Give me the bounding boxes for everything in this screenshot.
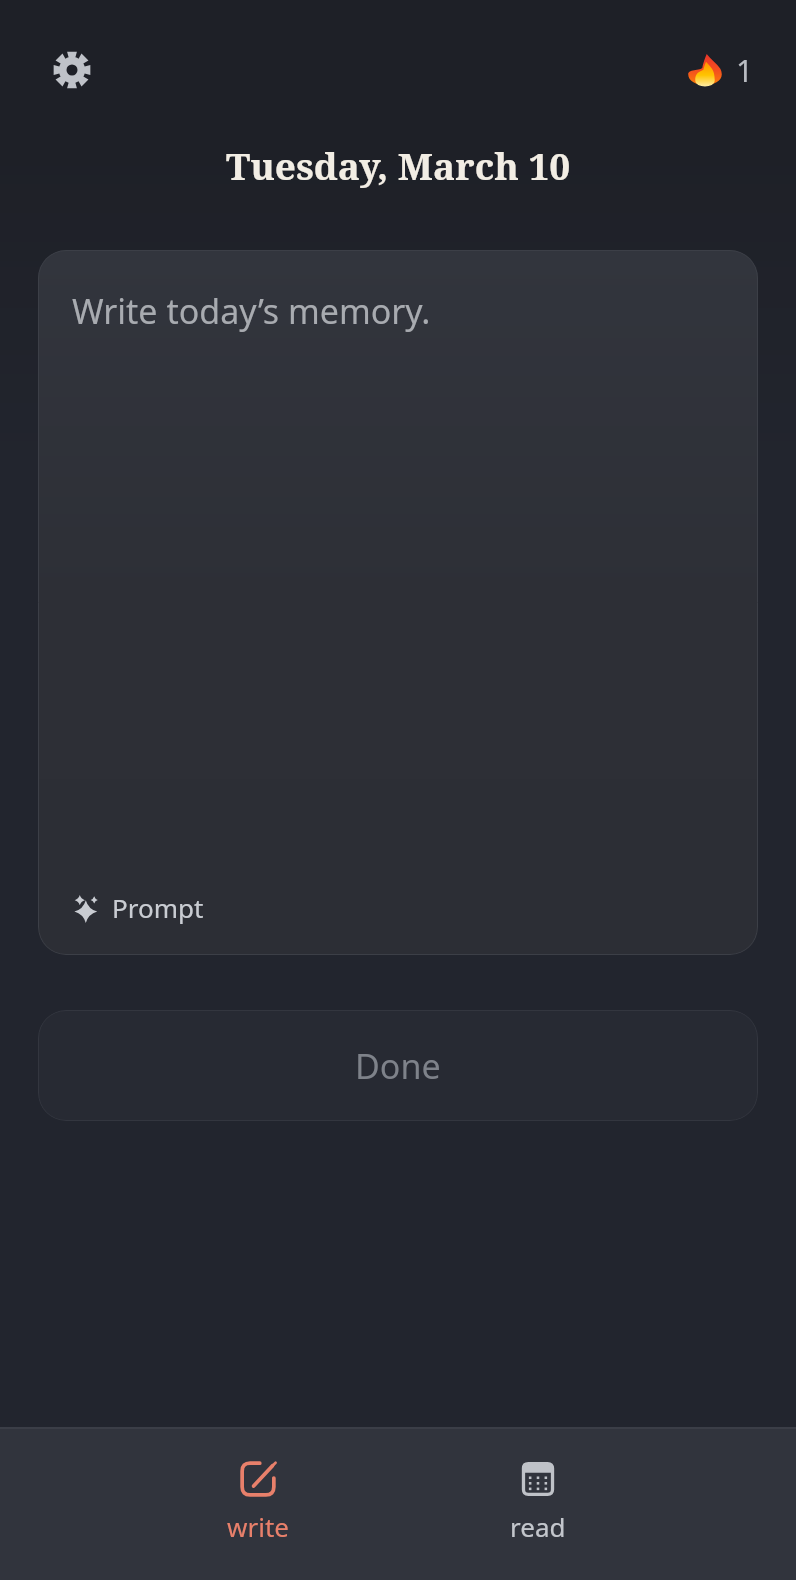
staticText: Tuesday, March 10 bbox=[226, 140, 571, 190]
button[interactable]: 1 bbox=[680, 45, 758, 95]
button[interactable]: Done bbox=[38, 1010, 758, 1121]
button[interactable]: Prompt bbox=[64, 884, 212, 931]
staticText: write bbox=[227, 1509, 289, 1544]
button[interactable]: write bbox=[158, 1453, 358, 1548]
button[interactable]: Settings bbox=[42, 40, 102, 100]
button[interactable]: read bbox=[438, 1453, 638, 1548]
staticText: 1 bbox=[736, 50, 754, 91]
staticText: Prompt bbox=[112, 890, 204, 925]
staticText: read bbox=[510, 1509, 566, 1544]
staticText: Write today’s memory. bbox=[72, 288, 431, 334]
staticText: Done bbox=[355, 1043, 441, 1089]
button[interactable]: Write today’s memory. bbox=[38, 250, 758, 955]
